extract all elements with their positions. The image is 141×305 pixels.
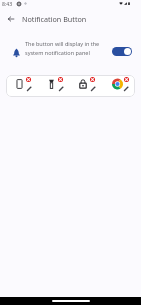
button[interactable]: Lock shortcut	[70, 75, 102, 97]
button[interactable]: Toggle notification button	[112, 47, 132, 56]
button[interactable]: Screen shortcut	[6, 75, 38, 97]
button[interactable]: Back	[4, 12, 17, 25]
button[interactable]: Flashlight shortcut	[38, 75, 70, 97]
staticText: 8:43	[2, 0, 13, 7]
button[interactable]: The button will display in the system no…	[0, 39, 141, 58]
staticText: Notification Button	[22, 14, 87, 24]
staticText: The button will display in the system no…	[25, 40, 109, 57]
button[interactable]: Chrome shortcut	[102, 75, 134, 97]
